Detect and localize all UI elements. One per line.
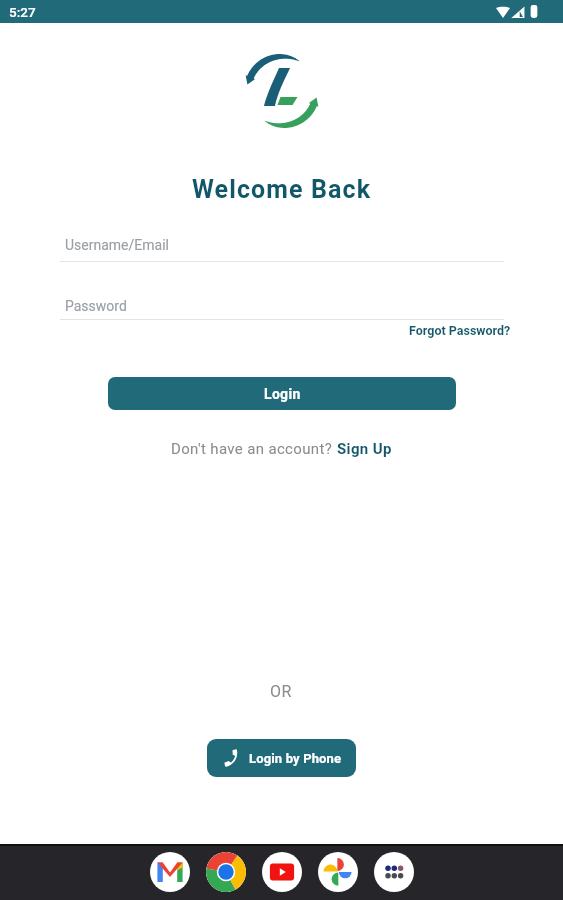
button[interactable]: Google Photos	[318, 852, 358, 892]
staticText: Sign Up	[337, 440, 392, 458]
button[interactable]: Forgot Password?	[409, 323, 511, 338]
button[interactable]: All apps	[374, 852, 414, 892]
staticText: Forgot Password?	[409, 323, 511, 338]
staticText: Password	[65, 298, 127, 314]
button[interactable]: Login	[108, 377, 456, 410]
staticText: 5:27	[9, 4, 36, 20]
button[interactable]: Gmail	[150, 852, 190, 892]
staticText: Username/Email	[65, 237, 169, 253]
staticText: Login	[264, 386, 301, 402]
button[interactable]: Chrome	[206, 852, 246, 892]
button[interactable]: Sign Up	[337, 440, 392, 458]
staticText: Welcome Back	[192, 175, 372, 204]
button[interactable]: Login by Phone	[207, 739, 356, 777]
staticText: Don't have an account?	[171, 440, 337, 458]
staticText: OR	[270, 682, 293, 701]
staticText: Login by Phone	[249, 751, 342, 766]
button[interactable]: YouTube	[262, 852, 302, 892]
